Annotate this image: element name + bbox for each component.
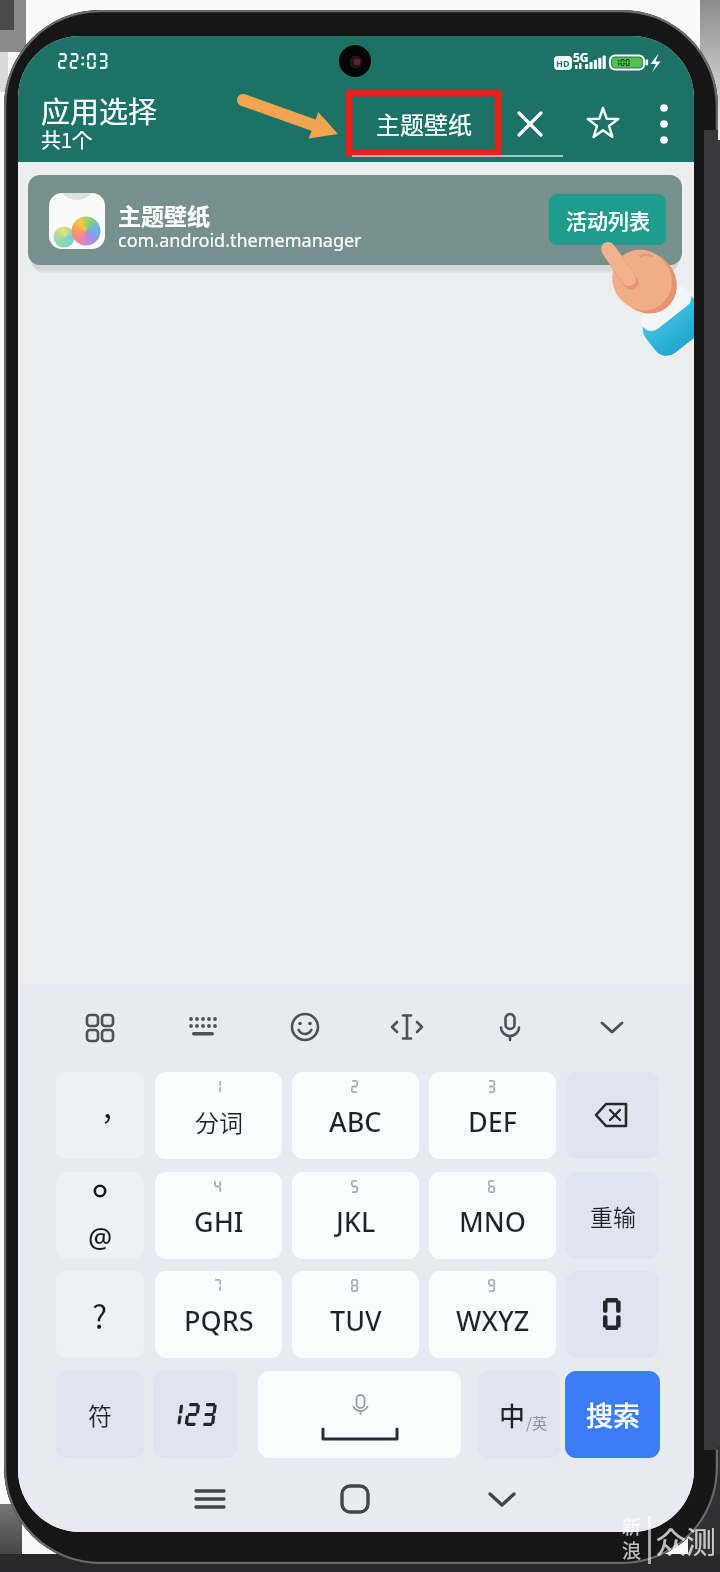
staticText: 活动列表 xyxy=(566,205,650,235)
button[interactable] xyxy=(652,102,676,146)
staticText: @ xyxy=(88,1219,113,1256)
button[interactable]: 符 xyxy=(56,1371,144,1458)
staticText: 主题壁纸 xyxy=(118,198,210,231)
staticText: , xyxy=(103,1081,112,1127)
staticText: PQRS xyxy=(184,1302,254,1339)
button[interactable]: 中 xyxy=(478,1371,560,1458)
staticText: HD xyxy=(556,57,570,69)
button[interactable]: GHI xyxy=(155,1172,282,1259)
button[interactable]: ABC xyxy=(292,1072,419,1159)
button[interactable] xyxy=(592,1007,632,1047)
button[interactable]: JKL xyxy=(292,1172,419,1259)
button[interactable] xyxy=(490,1007,530,1047)
button[interactable]: 活动列表 xyxy=(549,194,666,245)
staticText: 浪 xyxy=(622,1536,642,1564)
button[interactable]: @ xyxy=(56,1172,144,1259)
button[interactable] xyxy=(28,175,682,265)
button[interactable] xyxy=(566,1271,659,1358)
button[interactable] xyxy=(512,106,548,142)
button[interactable] xyxy=(585,105,621,141)
staticText: JKL xyxy=(336,1203,376,1240)
button[interactable]: WXYZ xyxy=(429,1271,556,1358)
staticText: ? xyxy=(92,1292,108,1338)
staticText: /英 xyxy=(526,1412,547,1434)
button[interactable] xyxy=(183,1007,223,1047)
staticText: GHI xyxy=(194,1203,244,1240)
button[interactable]: 搜索 xyxy=(565,1371,660,1458)
button[interactable]: TUV xyxy=(292,1271,419,1358)
staticText: 应用选择 xyxy=(41,89,158,131)
staticText: 中 xyxy=(499,1396,526,1434)
button[interactable]: , xyxy=(56,1072,144,1159)
button[interactable] xyxy=(387,1007,427,1047)
button[interactable] xyxy=(80,1007,120,1047)
staticText: com.android.thememanager xyxy=(118,228,362,253)
button[interactable] xyxy=(337,1481,373,1517)
staticText: 众测 xyxy=(656,1518,716,1561)
button[interactable] xyxy=(285,1007,325,1047)
button[interactable]: ? xyxy=(56,1271,144,1358)
staticText: 分词 xyxy=(195,1104,243,1139)
staticText: 符 xyxy=(88,1397,112,1432)
button[interactable]: 重输 xyxy=(566,1172,659,1259)
button[interactable] xyxy=(484,1481,520,1517)
button[interactable]: 分词 xyxy=(155,1072,282,1159)
staticText: TUV xyxy=(330,1302,382,1339)
staticText: 主题壁纸 xyxy=(376,106,472,141)
button[interactable] xyxy=(566,1072,659,1159)
staticText: 搜索 xyxy=(586,1395,640,1434)
staticText: ABC xyxy=(329,1103,382,1140)
staticText: DEF xyxy=(468,1103,518,1140)
button[interactable]: MNO xyxy=(429,1172,556,1259)
button[interactable] xyxy=(192,1481,228,1517)
staticText: 共1个 xyxy=(41,125,93,154)
staticText: 新 xyxy=(622,1512,642,1540)
button[interactable] xyxy=(258,1371,461,1458)
staticText: 重输 xyxy=(590,1199,636,1232)
staticText: MNO xyxy=(459,1203,526,1240)
staticText: WXYZ xyxy=(456,1302,530,1339)
button[interactable]: PQRS xyxy=(155,1271,282,1358)
button[interactable] xyxy=(153,1371,237,1458)
staticText: 5G xyxy=(573,49,589,65)
button[interactable]: DEF xyxy=(429,1072,556,1159)
